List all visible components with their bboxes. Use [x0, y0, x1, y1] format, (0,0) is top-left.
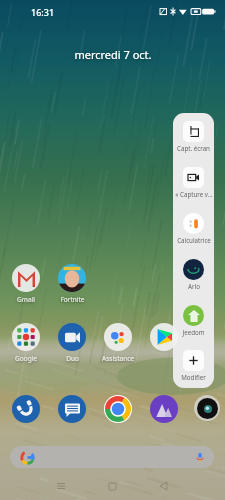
button[interactable]: Back	[150, 473, 176, 499]
button[interactable]: Assistance	[95, 323, 141, 363]
button[interactable]: Gmail	[3, 264, 49, 304]
button[interactable]: Chrome	[104, 395, 132, 423]
button[interactable]: « Capture v...	[173, 159, 214, 205]
button[interactable]: Gallery	[150, 395, 178, 423]
staticText: Jeedom	[182, 328, 205, 336]
button[interactable]: Duo	[49, 323, 95, 363]
staticText: Fortnite	[60, 295, 85, 304]
button[interactable]: Jeedom	[173, 297, 214, 343]
button[interactable]: Google	[3, 323, 49, 363]
button[interactable]: mercredi 7 oct.	[74, 47, 152, 62]
button[interactable]: Capt. écran	[173, 113, 214, 159]
button[interactable]	[10, 446, 214, 468]
button[interactable]: Fortnite	[49, 264, 95, 304]
button[interactable]: Messages	[58, 395, 86, 423]
staticText: 16:31	[31, 6, 55, 18]
staticText: Google	[15, 354, 37, 363]
staticText: « Capture v...	[175, 190, 213, 198]
button[interactable]: Home	[99, 473, 125, 499]
staticText: Assistance	[102, 354, 134, 363]
staticText: Arlo	[188, 282, 200, 290]
button[interactable]: Modifier	[173, 343, 214, 388]
button[interactable]: Arlo	[173, 251, 214, 297]
button[interactable]: Camera	[194, 395, 220, 421]
staticText: Modifier	[181, 373, 206, 381]
button[interactable]: Recents	[48, 473, 74, 499]
staticText: Capt. écran	[177, 144, 210, 152]
button[interactable]: Calculatrice	[173, 205, 214, 251]
staticText: Gmail	[17, 295, 35, 304]
button[interactable]	[141, 323, 187, 363]
button[interactable]: Phone	[12, 395, 40, 423]
staticText: Duo	[66, 354, 79, 363]
staticText: Calculatrice	[177, 236, 211, 244]
